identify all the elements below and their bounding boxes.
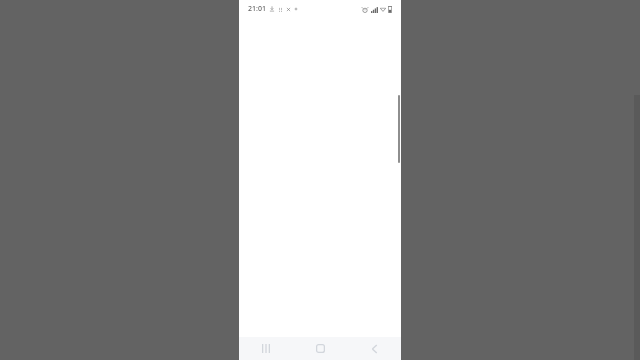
button[interactable]: Back — [347, 337, 401, 360]
button[interactable]: Recent apps — [239, 337, 293, 360]
button[interactable]: Home — [293, 337, 347, 360]
staticText: 21:01 — [248, 4, 266, 14]
